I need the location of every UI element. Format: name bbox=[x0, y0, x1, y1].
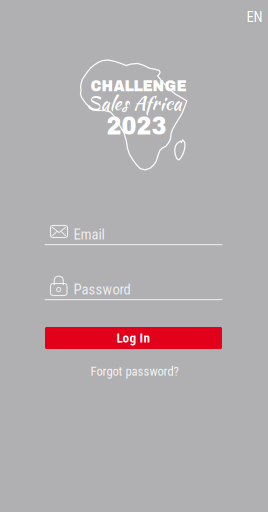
staticText: 2023 bbox=[106, 112, 166, 140]
staticText: Log In bbox=[116, 330, 150, 346]
button[interactable]: EN bbox=[236, 4, 268, 30]
button[interactable]: Forgot password? bbox=[79, 363, 189, 379]
staticText: CHALLENGE bbox=[90, 77, 186, 95]
staticText: EN bbox=[246, 8, 262, 26]
staticText: Email bbox=[73, 226, 104, 243]
button[interactable]: Log In bbox=[45, 327, 222, 349]
staticText: Forgot password? bbox=[90, 364, 178, 379]
staticText: Sales Africa bbox=[86, 89, 181, 117]
staticText: Password bbox=[73, 281, 130, 298]
